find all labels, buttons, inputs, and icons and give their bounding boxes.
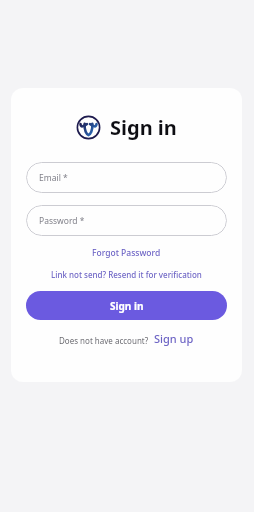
button[interactable]: Forgot Password [89, 245, 164, 261]
staticText: Does not have account? [59, 335, 149, 346]
button[interactable]: Sign in [26, 291, 227, 320]
button[interactable]: Link not send? Resend it for verificatio… [48, 267, 205, 282]
button[interactable]: Email * [26, 162, 227, 193]
staticText: Sign in [110, 299, 144, 313]
staticText: Sign up [154, 331, 194, 346]
staticText: Email * [39, 172, 68, 184]
button[interactable]: Sign up [153, 331, 195, 346]
staticText: Sign in [110, 114, 177, 141]
staticText: Link not send? Resend it for verificatio… [51, 269, 202, 280]
button[interactable]: Password * [26, 205, 227, 236]
staticText: Password * [39, 215, 85, 227]
staticText: Forgot Password [92, 247, 161, 259]
